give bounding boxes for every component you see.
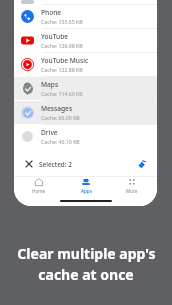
- button[interactable]: YouTube: [14, 29, 157, 52]
- button[interactable]: Clean selected caches: [137, 160, 146, 169]
- staticText: Home: [32, 188, 46, 194]
- staticText: Cache: 40.10 KB: [41, 138, 80, 145]
- staticText: Phone: [41, 8, 62, 17]
- staticText: Drive: [41, 128, 58, 137]
- staticText: Clear multiple app's: [17, 244, 156, 263]
- button[interactable]: Drive: [14, 125, 157, 148]
- staticText: Cache: 126.98 KB: [41, 42, 83, 49]
- button[interactable]: Home: [17, 177, 61, 195]
- button[interactable]: YouTube Music: [14, 53, 157, 76]
- button[interactable]: Apps: [64, 177, 108, 195]
- staticText: Cache: 114.69 KB: [41, 90, 83, 97]
- staticText: Apps: [81, 188, 92, 194]
- button[interactable]: Maps: [14, 77, 157, 100]
- button[interactable]: More: [110, 177, 154, 195]
- staticText: Cache: 155.65 KB: [41, 18, 83, 25]
- button[interactable]: Close selection: [19, 156, 152, 172]
- button[interactable]: Phone: [14, 5, 157, 28]
- staticText: Messages: [41, 104, 73, 113]
- staticText: YouTube Music: [41, 56, 89, 65]
- button[interactable]: Messages: [14, 101, 157, 124]
- staticText: Cache: 66.00 KB: [41, 114, 80, 121]
- staticText: More: [126, 188, 138, 194]
- staticText: cache at once: [38, 265, 134, 284]
- staticText: Selected: 2: [39, 160, 72, 169]
- button[interactable]: Close selection: [25, 160, 33, 168]
- staticText: YouTube: [41, 32, 69, 41]
- staticText: Maps: [41, 80, 59, 89]
- staticText: Cache: 122.88 KB: [41, 66, 83, 73]
